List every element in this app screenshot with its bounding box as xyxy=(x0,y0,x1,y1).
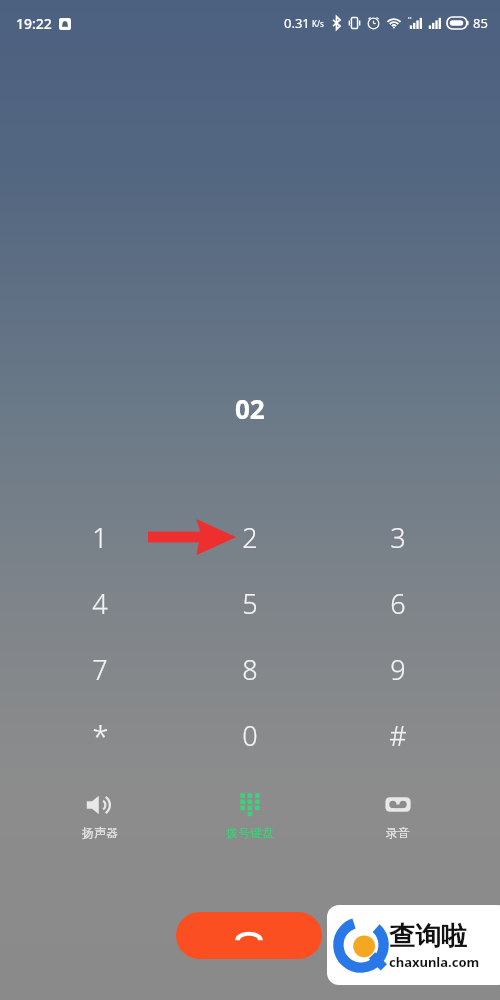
staticText: 0.31 xyxy=(284,14,310,32)
staticText: 7 xyxy=(92,651,108,688)
staticText: 拨号键盘 xyxy=(226,825,274,840)
button[interactable]: 1 xyxy=(52,506,148,568)
button[interactable]: 9 xyxy=(350,638,446,700)
staticText: 3 xyxy=(390,519,406,556)
button[interactable]: End call xyxy=(176,912,322,959)
staticText: 8 xyxy=(242,651,258,688)
button[interactable]: * xyxy=(52,704,148,766)
button[interactable]: 0 xyxy=(202,704,298,766)
staticText: 录音 xyxy=(386,825,410,840)
staticText: chaxunla.com xyxy=(389,953,480,971)
button[interactable]: 8 xyxy=(202,638,298,700)
button[interactable]: Speaker xyxy=(32,792,168,854)
button[interactable]: 4 xyxy=(52,572,148,634)
staticText: 85 xyxy=(473,14,488,32)
button[interactable]: Record xyxy=(330,792,466,854)
staticText: K/s xyxy=(312,18,324,29)
button[interactable]: 7 xyxy=(52,638,148,700)
button[interactable]: 3 xyxy=(350,506,446,568)
staticText: 1 xyxy=(92,519,108,556)
staticText: 5 xyxy=(242,585,258,622)
staticText: 19:22 xyxy=(16,14,52,33)
staticText: 查询啦 xyxy=(389,920,467,953)
button[interactable]: # xyxy=(350,704,446,766)
staticText: # xyxy=(389,717,407,754)
button[interactable]: 2 xyxy=(202,506,298,568)
staticText: 02 xyxy=(235,391,265,426)
staticText: 2 xyxy=(242,519,258,556)
staticText: 0 xyxy=(242,717,258,754)
staticText: 6 xyxy=(390,585,406,622)
staticText: 4 xyxy=(92,585,108,622)
staticText: 9 xyxy=(390,651,406,688)
button[interactable]: 5 xyxy=(202,572,298,634)
staticText: 扬声器 xyxy=(82,825,118,840)
staticText: * xyxy=(92,715,109,756)
button[interactable]: 6 xyxy=(350,572,446,634)
button[interactable]: Dial pad xyxy=(182,792,318,854)
